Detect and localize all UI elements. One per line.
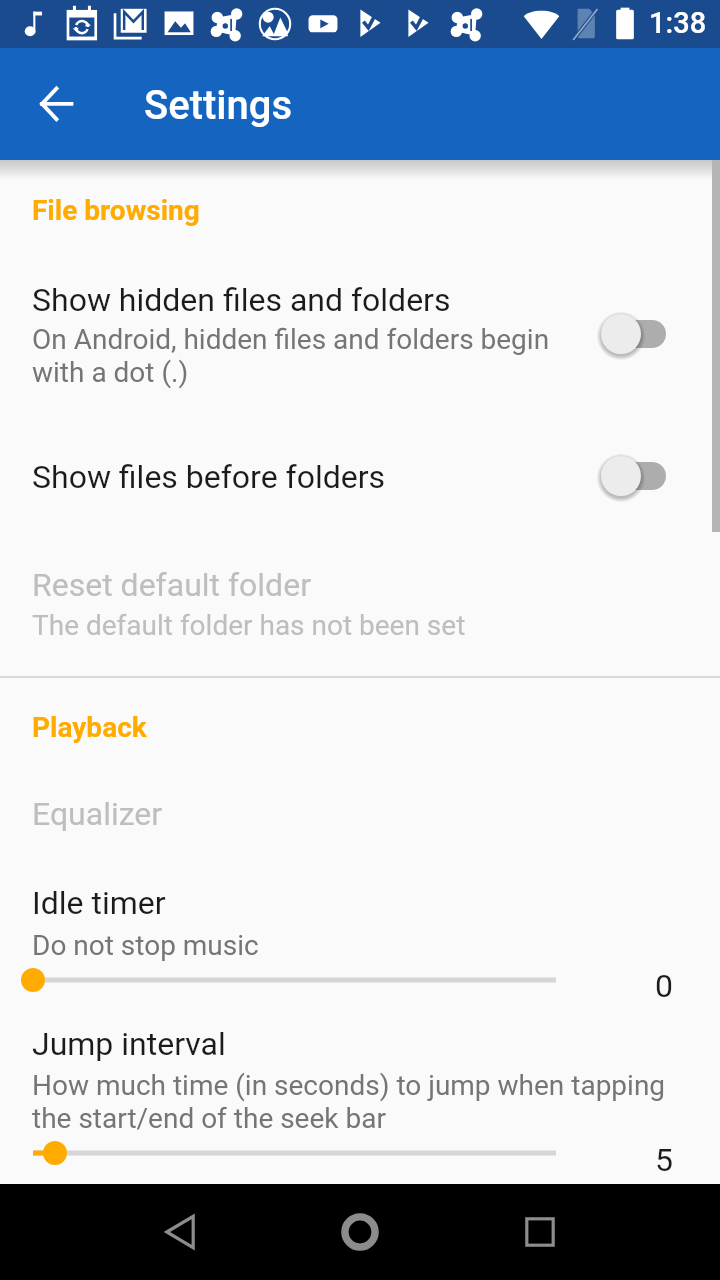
button[interactable]: Home (312, 1184, 408, 1280)
button[interactable]: Jump interval (0, 1010, 720, 1184)
staticText: Playback (32, 711, 147, 744)
staticText: 5 (655, 1141, 673, 1179)
button[interactable]: Idle timer (0, 868, 720, 1008)
staticText: Show files before folders (32, 458, 386, 496)
staticText: The default folder has not been set (32, 609, 466, 642)
staticText: Do not stop music (32, 929, 259, 962)
button[interactable]: Reset default folder (0, 548, 720, 658)
staticText: Idle timer (32, 884, 166, 922)
staticText: Jump interval (32, 1025, 226, 1063)
staticText: 0 (655, 967, 673, 1005)
button[interactable]: Equalizer (0, 780, 720, 846)
staticText: Settings (144, 82, 293, 129)
staticText: 1:38 (649, 6, 707, 40)
staticText: Reset default folder (32, 566, 311, 604)
staticText: How much time (in seconds) to jump when … (32, 1069, 678, 1135)
button[interactable]: Back (132, 1184, 228, 1280)
staticText: File browsing (32, 194, 200, 227)
staticText: Show hidden files and folders (32, 281, 451, 319)
staticText: Equalizer (32, 795, 163, 833)
button[interactable]: Show files before folders (0, 438, 720, 536)
button[interactable]: Back (16, 64, 96, 144)
staticText: On Android, hidden files and folders beg… (32, 323, 570, 389)
button[interactable]: Recents (492, 1184, 588, 1280)
button[interactable]: Show hidden files and folders (0, 262, 720, 438)
